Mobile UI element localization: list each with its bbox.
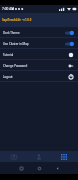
button[interactable]: Tutorial <box>0 49 78 60</box>
button[interactable]: Back <box>48 162 66 174</box>
button[interactable]: Library <box>2 151 26 162</box>
button[interactable]: Tutorial <box>68 52 74 58</box>
button[interactable]: Dark Theme <box>0 27 78 38</box>
button[interactable]: Logout <box>0 71 78 82</box>
staticText: SapiTeachLife ~v1.0.0 <box>2 18 32 22</box>
button[interactable]: Home <box>30 162 48 174</box>
button[interactable]: Recents <box>12 162 30 174</box>
button[interactable]: Change Password <box>68 63 74 69</box>
button[interactable]: Change Password <box>0 60 78 71</box>
button[interactable]: Profile <box>26 151 51 162</box>
button[interactable]: Apps <box>51 151 76 162</box>
staticText: Change Password <box>3 64 68 68</box>
staticText: 7:00 AM <box>2 7 15 11</box>
staticText: Logout <box>3 75 68 79</box>
staticText: Dark Theme <box>3 31 65 35</box>
button[interactable]: Use Cluster in Map <box>0 38 78 49</box>
staticText: Tutorial <box>3 53 68 57</box>
button[interactable]: Logout <box>68 74 74 80</box>
button[interactable] <box>65 30 74 36</box>
button[interactable] <box>65 41 74 47</box>
staticText: Use Cluster in Map <box>3 42 65 46</box>
